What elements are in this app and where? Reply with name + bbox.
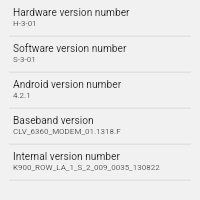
- button[interactable]: Internal version number: [0, 144, 200, 180]
- staticText: Hardware version number: [13, 7, 130, 19]
- staticText: Software version number: [13, 43, 127, 55]
- staticText: Internal version number: [13, 151, 120, 163]
- staticText: S-3-01: [13, 55, 36, 64]
- button[interactable]: Hardware version number: [0, 0, 200, 36]
- staticText: H-3-01: [13, 19, 37, 28]
- staticText: CLV_6360_MODEM_01.1318.F: [13, 127, 121, 136]
- staticText: Baseband version: [13, 115, 94, 127]
- staticText: 4.2.1: [13, 91, 31, 100]
- button[interactable]: Android version number: [0, 72, 200, 108]
- staticText: Android version number: [13, 79, 122, 91]
- staticText: K900_ROW_LA_1_S_2_009_0035_130822: [13, 163, 160, 172]
- button[interactable]: Software version number: [0, 36, 200, 72]
- button[interactable]: Baseband version: [0, 108, 200, 144]
